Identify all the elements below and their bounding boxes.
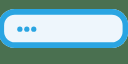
button[interactable]: More options [0, 0, 128, 64]
